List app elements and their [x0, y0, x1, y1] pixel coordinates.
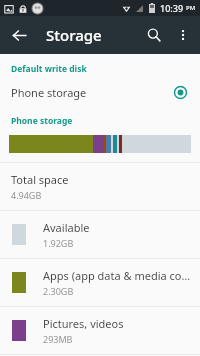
staticText: Phone storage: [11, 115, 73, 127]
staticText: Storage: [46, 25, 102, 45]
button[interactable]: Pictures, videos: [0, 307, 200, 354]
button[interactable]: Phone storage: [0, 79, 200, 105]
staticText: 1.92GB: [43, 237, 74, 249]
button[interactable]: Available: [0, 211, 200, 258]
button[interactable]: More options: [169, 21, 197, 49]
staticText: 293MB: [43, 333, 73, 345]
button[interactable]: Navigate up: [5, 21, 33, 49]
staticText: PM: [186, 4, 196, 12]
button[interactable]: Total space: [0, 163, 200, 210]
staticText: 4.94GB: [11, 189, 42, 201]
staticText: Default write disk: [11, 63, 87, 75]
staticText: Total space: [11, 172, 69, 187]
staticText: Apps (app data & media conten..: [43, 268, 192, 283]
staticText: 10:39: [160, 2, 184, 14]
staticText: Pictures, videos: [43, 316, 124, 331]
button[interactable]: Apps (app data & media conten..: [0, 259, 200, 306]
staticText: Phone storage: [11, 85, 87, 100]
button[interactable]: Search: [139, 20, 169, 50]
staticText: 2.30GB: [43, 285, 74, 297]
staticText: Available: [43, 220, 90, 235]
